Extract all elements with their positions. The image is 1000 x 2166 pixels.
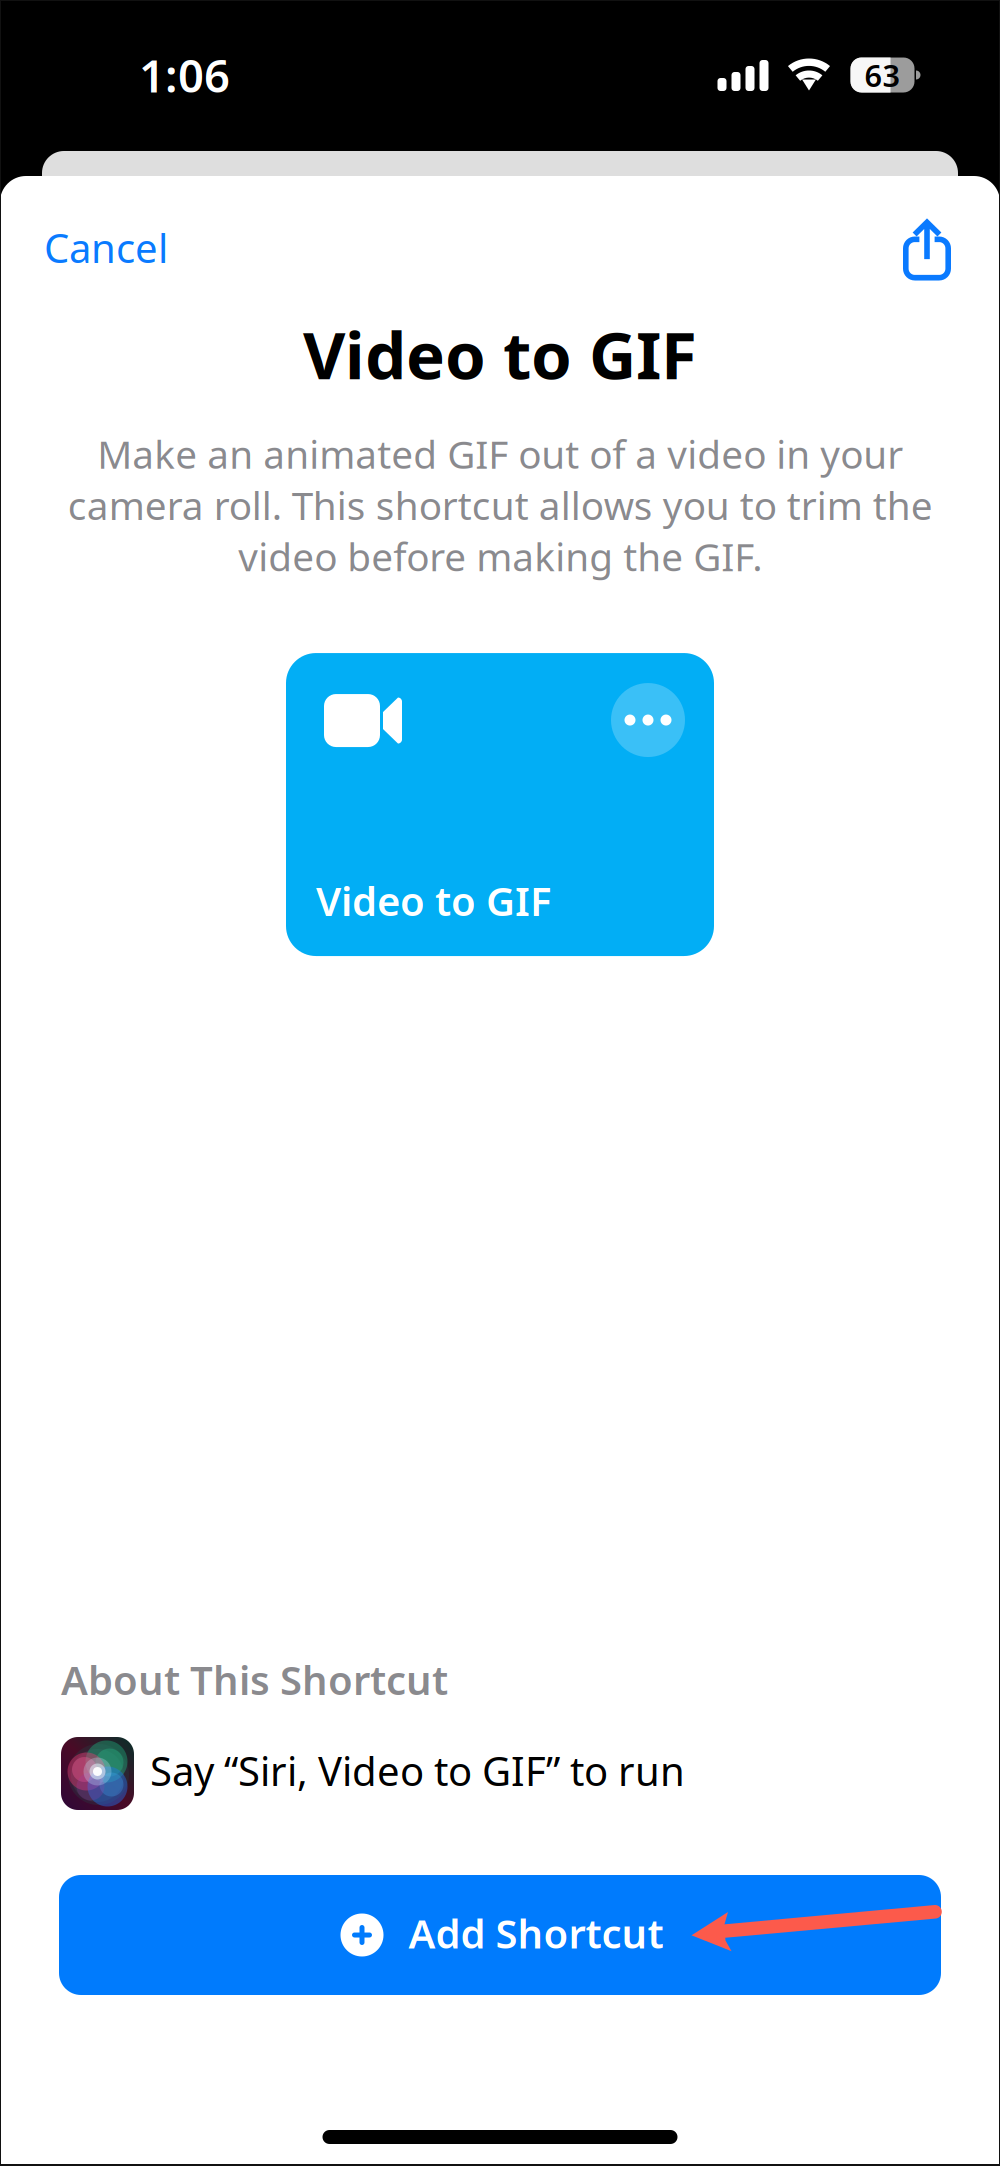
staticText: Video to GIF <box>303 311 697 397</box>
staticText: Add Shortcut <box>408 1906 663 1959</box>
staticText: Make an animated GIF out of a video in y… <box>67 428 932 582</box>
staticText: Cancel <box>44 221 168 274</box>
button[interactable]: Cancel <box>0 189 192 292</box>
staticText: About This Shortcut <box>61 1653 448 1706</box>
staticText: Video to GIF <box>316 874 552 927</box>
staticText: 63 <box>864 55 900 95</box>
button[interactable]: Share <box>879 187 1000 293</box>
button[interactable]: Add Shortcut <box>59 1875 941 1995</box>
staticText: Say “Siri, Video to GIF” to run <box>150 1744 685 1797</box>
staticText: 1:06 <box>139 45 230 105</box>
